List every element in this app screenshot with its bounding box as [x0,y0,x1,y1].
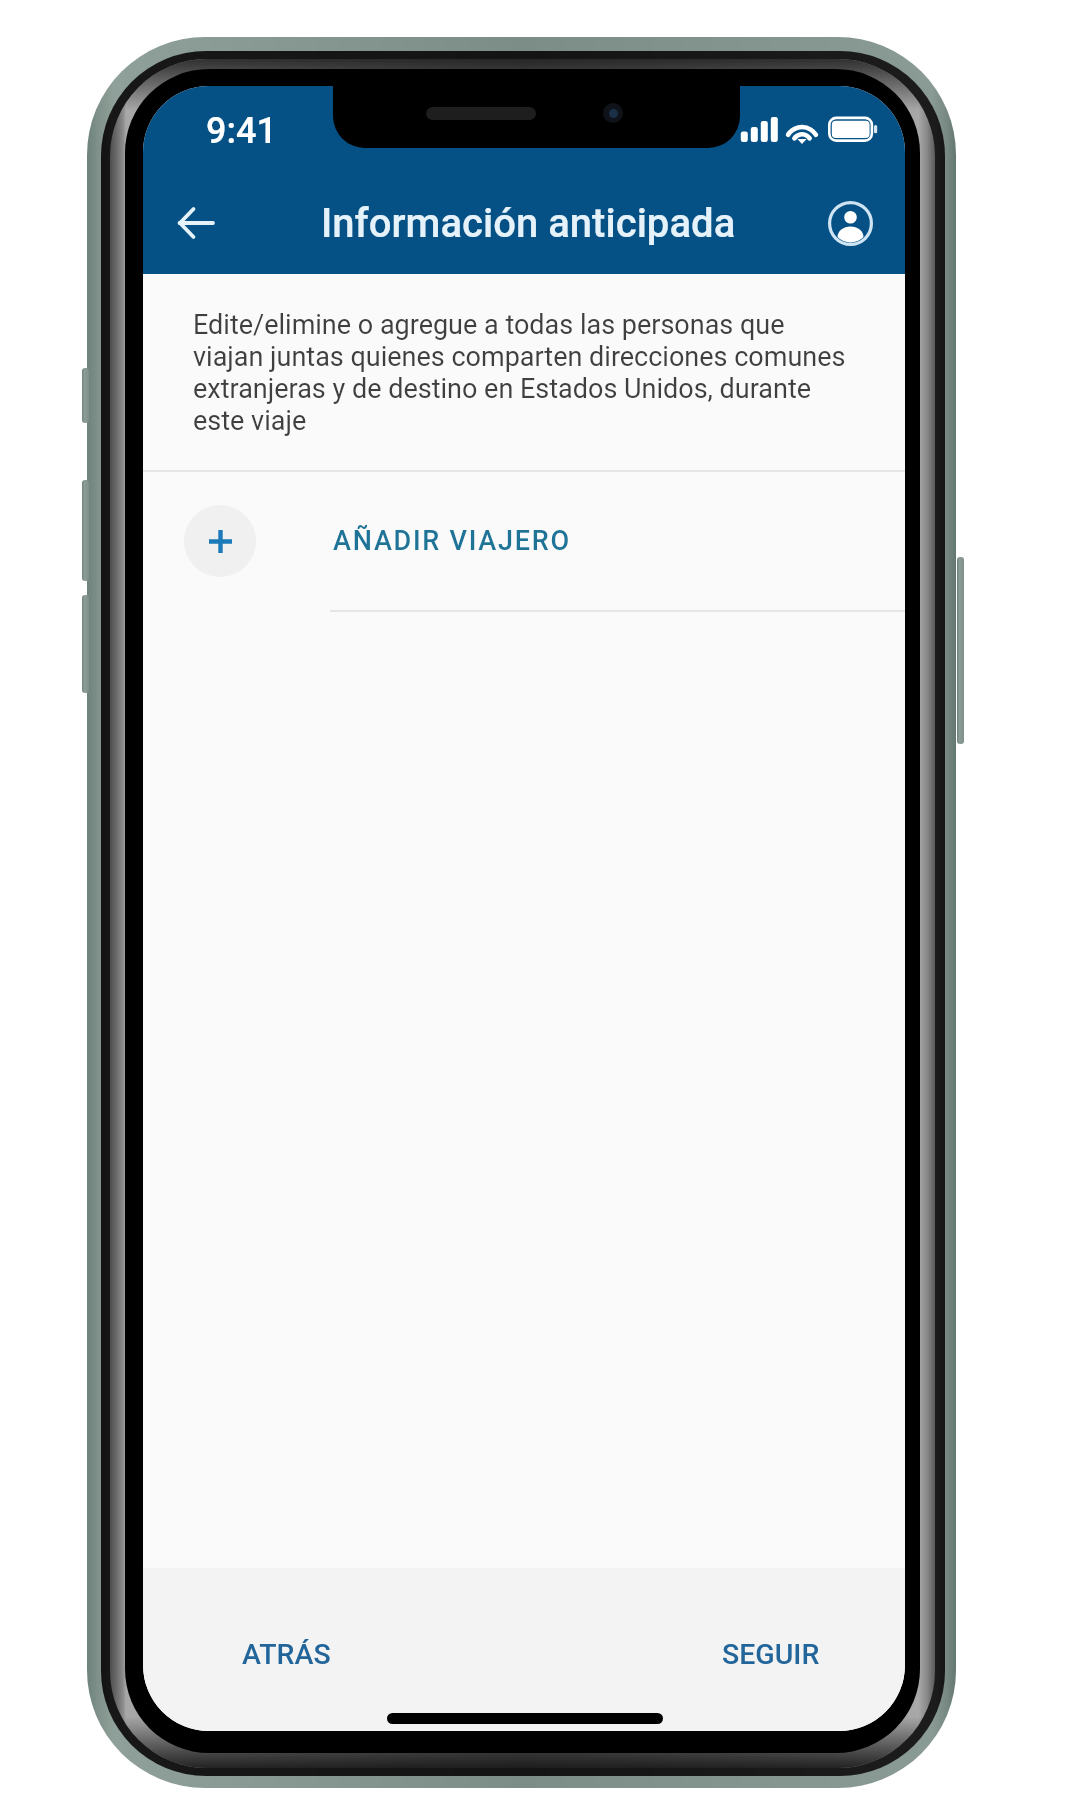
staticText: SEGUIR [722,1638,820,1671]
button[interactable]: AÑADIR VIAJERO [143,472,905,610]
button[interactable]: ATRÁS [226,1622,347,1687]
button[interactable]: Account [813,186,887,260]
staticText: Edite/elimine o agregue a todas las pers… [193,309,861,437]
staticText: 9:41 [206,110,277,152]
staticText: ATRÁS [242,1638,331,1671]
staticText: AÑADIR VIAJERO [333,525,571,557]
button[interactable]: Back [159,186,233,260]
staticText: Información anticipada [321,200,736,247]
button[interactable]: SEGUIR [706,1622,836,1687]
